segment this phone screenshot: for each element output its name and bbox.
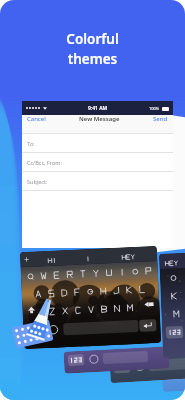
staticText: 100% [149,106,160,111]
staticText: To: [27,140,35,147]
button[interactable]: To: [22,133,173,152]
button[interactable]: Keyboard themes [0,0,185,400]
button[interactable]: Send [153,115,168,123]
button[interactable]: Cancel [27,115,46,123]
staticText: Cancel [27,115,46,123]
button[interactable]: Subject: [22,171,173,190]
button[interactable]: Theme brush [9,296,57,344]
staticText: 9:41 AM [88,105,108,112]
staticText: Subject: [27,178,48,185]
staticText: Cc/Bcc, From: [27,159,62,166]
staticText: New Message [79,115,120,123]
staticText: Send [153,115,168,123]
staticText: Colorful themes [0,30,185,68]
button[interactable]: Cc/Bcc, From: [22,152,173,171]
